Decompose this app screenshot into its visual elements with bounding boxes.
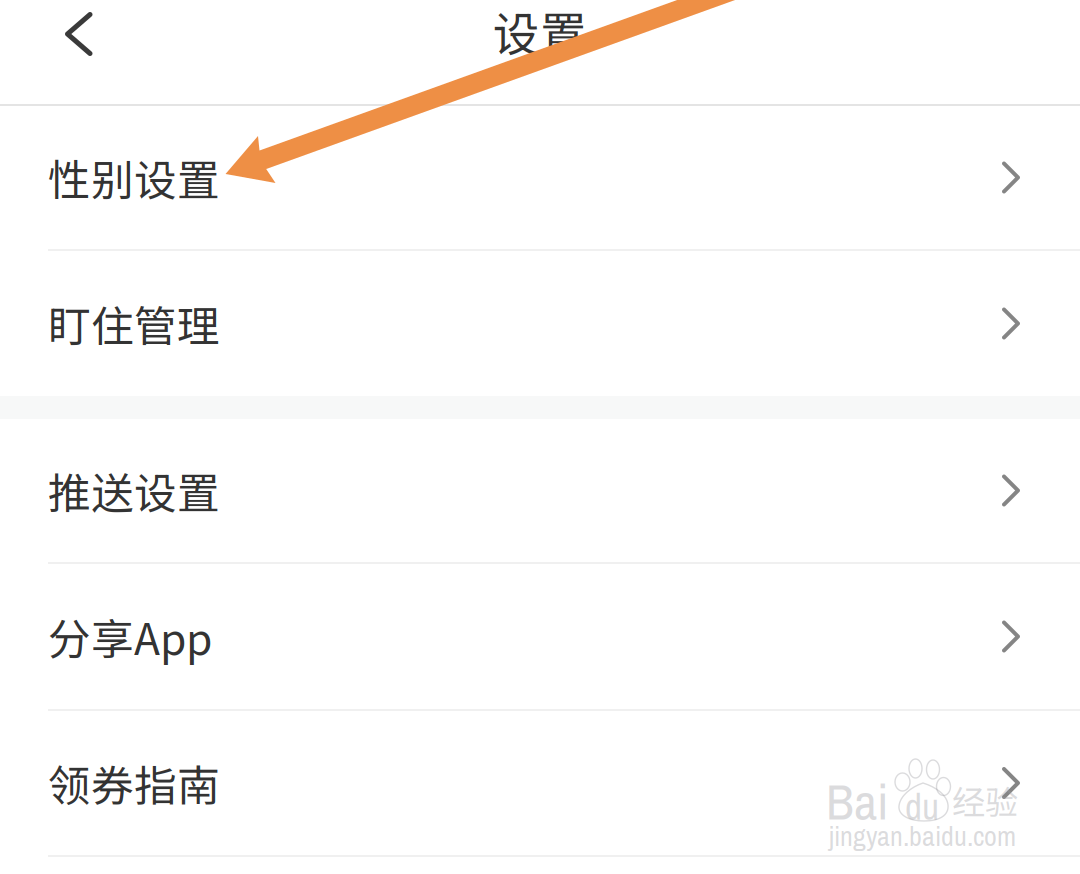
staticText: 推送设置: [48, 460, 220, 521]
button[interactable]: 推送设置: [0, 419, 1080, 562]
button[interactable]: 盯住管理: [0, 251, 1080, 396]
button[interactable]: 性别设置: [0, 106, 1080, 249]
staticText: 领券指南: [48, 752, 220, 814]
button[interactable]: 领券指南: [0, 711, 1080, 855]
staticText: 分享App: [48, 606, 212, 667]
staticText: 盯住管理: [48, 293, 220, 354]
staticText: 性别设置: [48, 147, 220, 208]
staticText: 经验: [952, 776, 1018, 824]
button[interactable]: Back: [0, 0, 117, 86]
staticText: 设置: [493, 0, 587, 65]
staticText: jingyan.baidu.com: [829, 817, 1016, 855]
staticText: Bai: [826, 767, 889, 835]
staticText: du: [905, 781, 939, 831]
button[interactable]: 分享App: [0, 564, 1080, 709]
